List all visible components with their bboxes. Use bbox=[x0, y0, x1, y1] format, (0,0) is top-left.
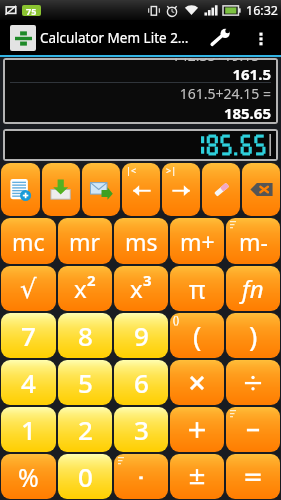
button[interactable]: 9 bbox=[114, 313, 168, 358]
button[interactable]: 0 bbox=[58, 454, 112, 499]
button[interactable]: π bbox=[170, 266, 224, 311]
staticText: 6 bbox=[134, 365, 149, 400]
staticText: 9 bbox=[134, 318, 149, 353]
button[interactable]: Calculation history bbox=[5, 60, 276, 122]
button[interactable]: % bbox=[1, 454, 56, 499]
button[interactable]: 4 bbox=[1, 360, 56, 405]
button[interactable]: 6 bbox=[114, 360, 168, 405]
button[interactable]: mr bbox=[58, 218, 112, 264]
button[interactable]: x bbox=[114, 266, 168, 311]
staticText: 185.65 bbox=[223, 103, 271, 123]
staticText: ) bbox=[249, 317, 258, 355]
button[interactable]: m- bbox=[226, 218, 280, 264]
staticText: 2 bbox=[87, 270, 96, 290]
staticText: x bbox=[74, 272, 87, 305]
button[interactable]: m+ bbox=[170, 218, 224, 264]
button[interactable]: Decimal point bbox=[114, 454, 168, 499]
staticText: () bbox=[173, 313, 179, 327]
button[interactable]: Multiply bbox=[170, 360, 224, 405]
button[interactable]: 2 bbox=[58, 407, 112, 452]
staticText: π bbox=[189, 272, 206, 306]
staticText: m- bbox=[239, 226, 268, 257]
button[interactable]: mc bbox=[1, 218, 56, 264]
button[interactable]: Clear bbox=[202, 163, 240, 216]
button[interactable]: Backspace bbox=[242, 163, 280, 216]
button[interactable]: 5 bbox=[58, 360, 112, 405]
staticText: 0 bbox=[78, 459, 93, 494]
staticText: |< bbox=[126, 164, 137, 176]
button[interactable]: 3 bbox=[114, 407, 168, 452]
button[interactable]: Plus minus bbox=[170, 454, 224, 499]
staticText: 75 bbox=[26, 5, 37, 16]
button[interactable]: Minus bbox=[226, 407, 280, 452]
button[interactable]: 1 bbox=[1, 407, 56, 452]
staticText: ( bbox=[193, 317, 202, 355]
staticText: 3 bbox=[134, 412, 149, 447]
staticText: x bbox=[130, 272, 143, 305]
staticText: 5 bbox=[78, 365, 93, 400]
staticText: 161.5 bbox=[232, 64, 271, 84]
staticText: 7 bbox=[21, 318, 36, 353]
staticText: >| bbox=[166, 164, 177, 176]
button[interactable]: 8 bbox=[58, 313, 112, 358]
button[interactable]: Send bbox=[82, 163, 120, 216]
button[interactable]: Cursor right bbox=[162, 163, 200, 216]
staticText: 1 bbox=[21, 412, 36, 447]
button[interactable]: fn bbox=[226, 266, 280, 311]
staticText: ms bbox=[125, 226, 158, 257]
button[interactable]: More options bbox=[248, 25, 274, 51]
button[interactable]: Divide bbox=[226, 360, 280, 405]
button[interactable]: Plus bbox=[170, 407, 224, 452]
staticText: fn bbox=[242, 272, 264, 305]
button[interactable]: Cursor left bbox=[122, 163, 160, 216]
staticText: 142.35+19.15 = bbox=[171, 58, 271, 65]
button[interactable]: √ bbox=[1, 266, 56, 311]
staticText: Calculator Mem Lite 2… bbox=[40, 29, 189, 47]
staticText: mc bbox=[12, 226, 45, 257]
staticText: 161.5+24.15 = bbox=[179, 84, 271, 103]
staticText: 2 bbox=[78, 412, 93, 447]
staticText: % bbox=[18, 460, 39, 494]
button[interactable]: New calculation bbox=[1, 163, 40, 216]
button[interactable]: Display 185.65 bbox=[5, 131, 276, 159]
button[interactable]: 7 bbox=[1, 313, 56, 358]
staticText: 3 bbox=[143, 270, 152, 290]
button[interactable]: x bbox=[58, 266, 112, 311]
staticText: mr bbox=[69, 226, 101, 257]
staticText: 8 bbox=[78, 318, 93, 353]
button[interactable]: ) bbox=[226, 313, 280, 358]
button[interactable]: ( bbox=[170, 313, 224, 358]
staticText: √ bbox=[20, 274, 37, 304]
staticText: 4 bbox=[21, 365, 36, 400]
button[interactable]: Equals bbox=[226, 454, 280, 499]
button[interactable]: ms bbox=[114, 218, 168, 264]
staticText: 16:32 bbox=[246, 2, 278, 19]
staticText: m+ bbox=[180, 226, 215, 257]
button[interactable]: Settings bbox=[204, 22, 236, 54]
button[interactable]: Save bbox=[42, 163, 80, 216]
